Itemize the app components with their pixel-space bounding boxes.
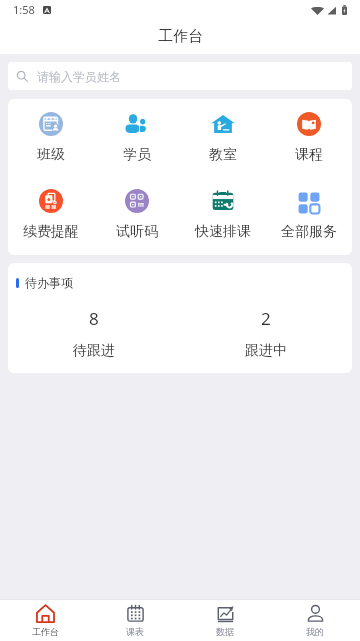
staticText: 续费提醒 — [23, 223, 79, 241]
staticText: 1:58 — [13, 2, 35, 17]
button[interactable]: 班级 — [8, 112, 94, 164]
button[interactable]: 工作台 — [0, 600, 90, 641]
button[interactable]: 课程 — [266, 112, 352, 164]
staticText: 2 — [261, 307, 271, 330]
button[interactable]: 续费提醒 — [8, 189, 94, 241]
staticText: 数据 — [216, 626, 234, 637]
staticText: 待办事项 — [25, 275, 73, 290]
button[interactable]: 学员 — [94, 112, 180, 164]
staticText: 待跟进 — [73, 342, 115, 360]
staticText: 全部服务 — [281, 223, 337, 241]
button[interactable]: 全部服务 — [266, 189, 352, 241]
staticText: 班级 — [37, 146, 65, 164]
staticText: 快速排课 — [195, 223, 251, 241]
button[interactable]: 快速排课 — [180, 189, 266, 241]
staticText: 工作台 — [158, 27, 203, 46]
staticText: 试听码 — [116, 223, 158, 241]
staticText: 学员 — [123, 146, 151, 164]
staticText: 教室 — [209, 146, 237, 164]
staticText: 8 — [89, 307, 99, 330]
button[interactable]: 数据 — [180, 600, 270, 641]
staticText: 请输入学员姓名 — [37, 69, 121, 84]
button[interactable]: 我的 — [270, 600, 360, 641]
button[interactable]: 试听码 — [94, 189, 180, 241]
button[interactable]: 课表 — [90, 600, 180, 641]
staticText: 我的 — [306, 626, 324, 637]
button[interactable]: 教室 — [180, 112, 266, 164]
staticText: 课表 — [126, 626, 144, 637]
staticText: 跟进中 — [245, 342, 287, 360]
button[interactable]: 8 — [8, 307, 180, 360]
staticText: 工作台 — [32, 626, 59, 637]
button[interactable]: 2 — [180, 307, 352, 360]
button[interactable]: 搜索学员 — [8, 62, 352, 90]
staticText: 课程 — [295, 146, 323, 164]
